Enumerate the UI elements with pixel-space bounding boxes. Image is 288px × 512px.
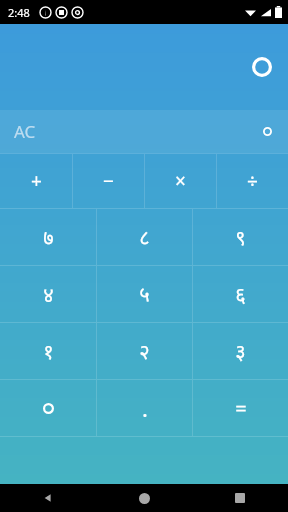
- button[interactable]: ८: [97, 209, 192, 265]
- button[interactable]: ५: [97, 266, 192, 322]
- button[interactable]: ९: [193, 209, 288, 265]
- button[interactable]: ७: [0, 209, 96, 265]
- staticText: ४: [43, 281, 54, 308]
- button[interactable]: १: [0, 323, 96, 379]
- staticText: ८: [139, 224, 150, 251]
- button[interactable]: Recent apps: [192, 484, 288, 512]
- button[interactable]: ×: [145, 154, 216, 208]
- staticText: ६: [235, 281, 246, 308]
- staticText: ×: [175, 168, 186, 194]
- staticText: .: [142, 393, 148, 423]
- staticText: ३: [235, 338, 246, 365]
- staticText: −: [103, 168, 114, 194]
- staticText: १: [43, 338, 54, 365]
- staticText: ÷: [247, 168, 258, 194]
- staticText: AC: [14, 120, 36, 143]
- staticText: ९: [235, 224, 246, 251]
- button[interactable]: Back: [0, 484, 96, 512]
- button[interactable]: =: [193, 380, 288, 436]
- staticText: +: [31, 168, 42, 194]
- button[interactable]: AC: [6, 116, 44, 147]
- button[interactable]: −: [73, 154, 144, 208]
- staticText: =: [235, 395, 247, 422]
- button[interactable]: ३: [193, 323, 288, 379]
- button[interactable]: ÷: [217, 154, 288, 208]
- staticText: ५: [139, 281, 150, 308]
- button[interactable]: २: [97, 323, 192, 379]
- button[interactable]: [0, 380, 96, 436]
- button[interactable]: Home: [96, 484, 192, 512]
- button[interactable]: ६: [193, 266, 288, 322]
- button[interactable]: ४: [0, 266, 96, 322]
- button[interactable]: +: [0, 154, 72, 208]
- staticText: 2:48: [8, 5, 30, 20]
- button[interactable]: .: [97, 380, 192, 436]
- staticText: २: [139, 338, 150, 365]
- staticText: ७: [43, 224, 54, 251]
